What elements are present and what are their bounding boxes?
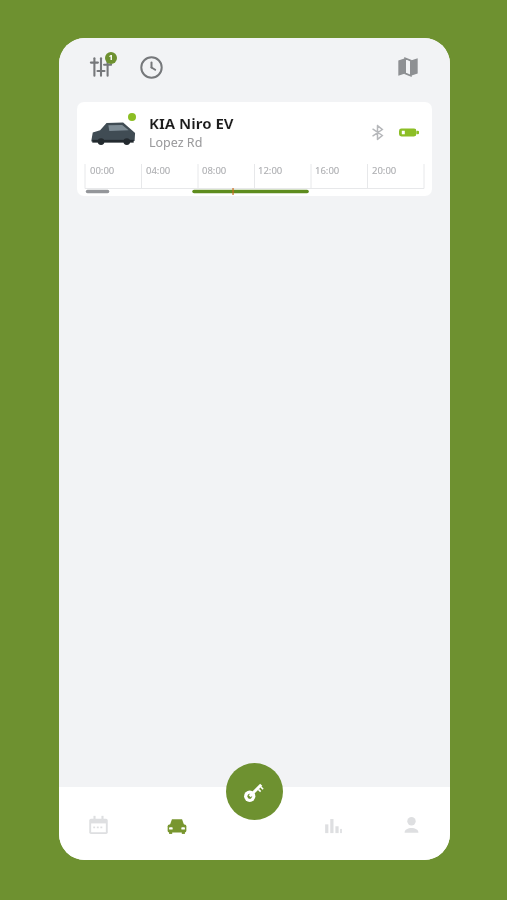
staticText: Lopez Rd [149,134,203,151]
staticText: 12:00 [258,164,283,177]
button[interactable]: History [134,50,168,84]
staticText: 20:00 [372,164,397,177]
button[interactable]: Filter [84,50,118,84]
button[interactable]: KIA Niro EV [77,102,432,196]
staticText: KIA Niro EV [149,113,234,133]
staticText: 16:00 [315,164,340,177]
staticText: 04:00 [146,164,171,177]
staticText: 1 [109,53,114,63]
button[interactable]: Profile [372,787,450,860]
staticText: 08:00 [202,164,227,177]
staticText: 00:00 [90,164,115,177]
button[interactable]: Map [391,50,425,84]
button[interactable]: Statistics [294,787,372,860]
button[interactable]: Calendar [59,787,138,860]
button[interactable]: Vehicles [138,787,216,860]
button[interactable]: Digital key [226,763,283,820]
